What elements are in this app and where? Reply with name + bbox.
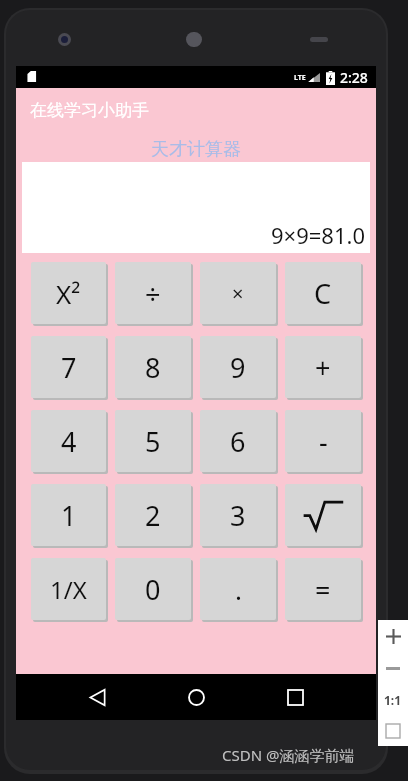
button[interactable]: 7 bbox=[31, 336, 106, 398]
button[interactable]: 1/X bbox=[31, 558, 106, 620]
button[interactable]: Back bbox=[78, 678, 116, 716]
button[interactable]: 1 bbox=[31, 484, 106, 546]
staticText: 6 bbox=[230, 423, 246, 460]
staticText: 0 bbox=[145, 571, 161, 608]
staticText: × bbox=[232, 280, 244, 307]
button[interactable]: 6 bbox=[200, 410, 276, 472]
button[interactable]: √ bbox=[285, 484, 361, 546]
button[interactable]: 2 bbox=[115, 484, 191, 546]
button[interactable]: 0 bbox=[115, 558, 191, 620]
staticText: 3 bbox=[230, 497, 246, 534]
staticText: 7 bbox=[61, 349, 77, 386]
staticText: + bbox=[315, 349, 331, 386]
button[interactable]: ÷ bbox=[115, 262, 191, 324]
button[interactable]: 5 bbox=[115, 410, 191, 472]
staticText: 9 bbox=[230, 349, 246, 386]
staticText: 1:1 bbox=[384, 692, 402, 708]
staticText: 9×9=81.0 bbox=[271, 220, 365, 250]
button[interactable]: Recents bbox=[276, 678, 314, 716]
button[interactable]: 在线学习小助手 bbox=[16, 88, 376, 133]
button[interactable]: X² bbox=[31, 262, 106, 324]
staticText: ÷ bbox=[145, 275, 161, 312]
button[interactable]: 9×9=81.0 bbox=[22, 162, 370, 253]
staticText: 在线学习小助手 bbox=[30, 100, 149, 121]
staticText: 1 bbox=[61, 497, 77, 534]
staticText: X² bbox=[56, 276, 81, 311]
button[interactable]: . bbox=[200, 558, 276, 620]
staticText: LTE bbox=[294, 73, 306, 83]
staticText: 2:28 bbox=[340, 68, 368, 87]
button[interactable]: 3 bbox=[200, 484, 276, 546]
button[interactable]: Home bbox=[177, 678, 215, 716]
button[interactable]: = bbox=[285, 558, 361, 620]
button[interactable]: 8 bbox=[115, 336, 191, 398]
button[interactable]: Zoom out bbox=[378, 652, 408, 684]
button[interactable]: 9 bbox=[200, 336, 276, 398]
button[interactable]: C bbox=[285, 262, 361, 324]
button[interactable]: + bbox=[285, 336, 361, 398]
button[interactable]: 4 bbox=[31, 410, 106, 472]
staticText: 2 bbox=[145, 497, 161, 534]
staticText: C bbox=[314, 275, 332, 312]
button[interactable]: Fullscreen bbox=[378, 716, 408, 746]
button[interactable]: × bbox=[200, 262, 276, 324]
button[interactable]: - bbox=[285, 410, 361, 472]
staticText: = bbox=[315, 571, 331, 608]
button[interactable]: Actual size bbox=[378, 684, 408, 716]
staticText: 5 bbox=[145, 423, 161, 460]
staticText: . bbox=[235, 572, 242, 607]
button[interactable]: Zoom in bbox=[378, 620, 408, 652]
staticText: 天才计算器 bbox=[151, 138, 241, 161]
staticText: - bbox=[319, 423, 328, 460]
staticText: CSDN @涵涵学前端 bbox=[222, 745, 355, 765]
staticText: 4 bbox=[61, 423, 77, 460]
staticText: 8 bbox=[145, 349, 161, 386]
staticText: 1/X bbox=[50, 573, 87, 606]
